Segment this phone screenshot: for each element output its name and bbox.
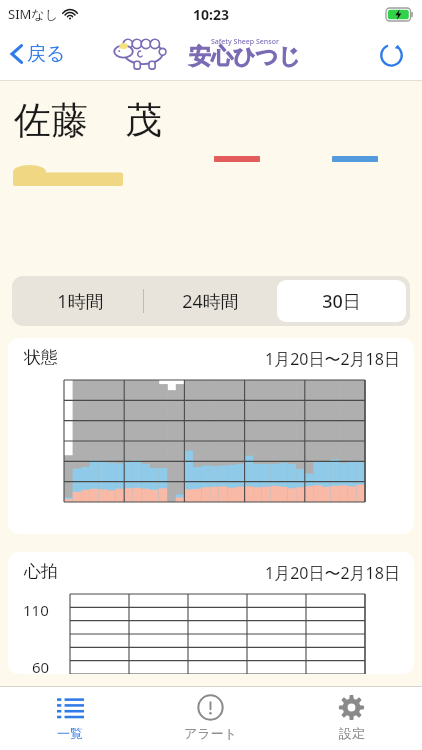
staticText: SIMなし	[8, 5, 58, 23]
staticText: 10:23	[193, 5, 229, 24]
staticText: 設定	[339, 725, 365, 741]
button[interactable]: 1時間	[16, 280, 144, 322]
staticText: 安心ひつじ	[189, 43, 301, 71]
staticText: 1時間	[57, 289, 104, 314]
staticText: 24時間	[182, 289, 239, 314]
staticText: アラート	[184, 725, 237, 741]
button[interactable]: アラート	[140, 687, 281, 750]
button[interactable]: 一覧	[0, 687, 140, 750]
staticText: 戻る	[27, 42, 66, 66]
staticText: 110	[23, 600, 49, 620]
staticText: 一覧	[57, 725, 83, 741]
button[interactable]: 30日	[277, 280, 406, 322]
button[interactable]: 戻る	[6, 38, 70, 70]
button[interactable]: 心拍	[8, 552, 414, 674]
button[interactable]: Refresh	[373, 36, 410, 73]
button[interactable]: 設定	[281, 687, 422, 750]
staticText: 1月20日〜2月18日	[265, 562, 400, 584]
button[interactable]: 24時間	[146, 280, 275, 322]
staticText: 佐藤 茂	[14, 93, 162, 144]
staticText: 60	[32, 657, 50, 674]
staticText: 30日	[322, 289, 361, 314]
staticText: Safety Sheep Sensor	[211, 37, 279, 47]
staticText: 心拍	[24, 561, 58, 582]
staticText: 1月20日〜2月18日	[265, 348, 400, 370]
staticText: 状態	[24, 347, 58, 368]
button[interactable]: 状態	[8, 338, 414, 534]
